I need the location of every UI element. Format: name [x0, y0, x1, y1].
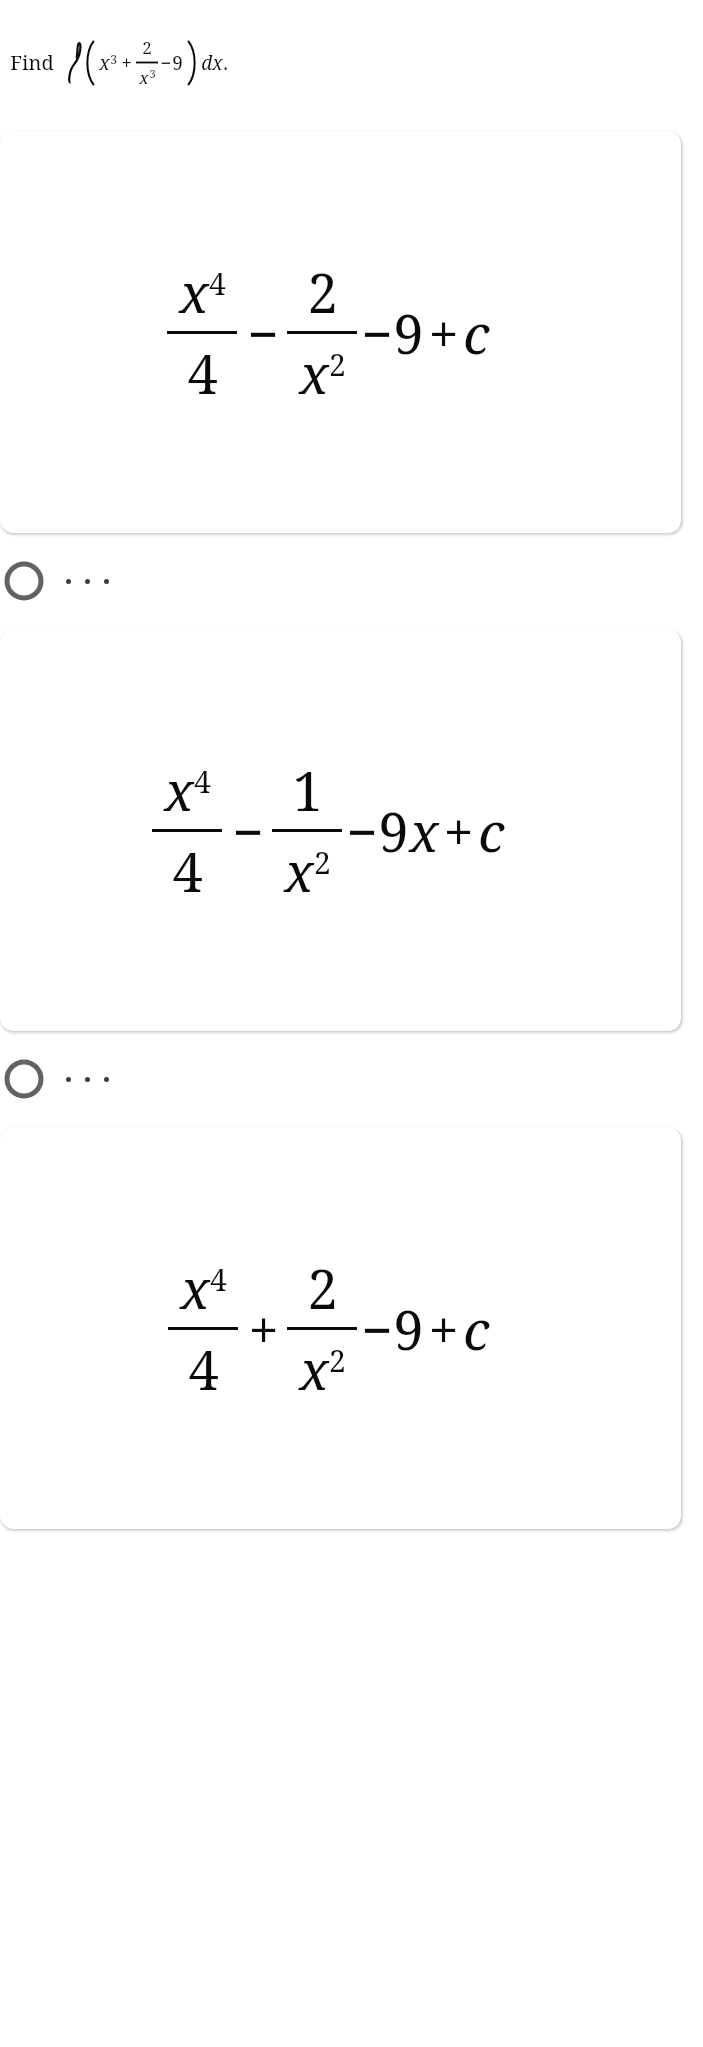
staticText: − [361, 1292, 393, 1366]
staticText: 3 [110, 51, 117, 67]
staticText: 4 [209, 263, 226, 304]
staticText: x [99, 50, 110, 76]
staticText: x [180, 1251, 210, 1325]
button[interactable]: x [0, 1127, 681, 1529]
staticText: x [179, 255, 209, 329]
staticText: + [121, 50, 132, 76]
staticText: x [139, 66, 149, 89]
staticText: 9 [393, 1292, 424, 1366]
staticText: dx [201, 50, 223, 76]
staticText: 3 [149, 66, 156, 81]
staticText: 4 [187, 336, 218, 410]
staticText: − [160, 50, 172, 76]
staticText: + [428, 1292, 459, 1366]
staticText: + [248, 1292, 279, 1366]
staticText: x [299, 1332, 329, 1406]
staticText: 1 [292, 753, 323, 827]
button[interactable]: x [0, 131, 681, 533]
staticText: − [232, 794, 264, 868]
staticText: 4 [188, 1332, 219, 1406]
staticText: + [428, 296, 459, 370]
staticText: + [443, 794, 474, 868]
staticText: 4 [194, 761, 211, 802]
staticText: 9 [378, 794, 409, 868]
staticText: x [299, 336, 329, 410]
staticText: c [463, 1292, 490, 1366]
button[interactable]: x [0, 629, 681, 1031]
staticText: 2 [142, 36, 152, 59]
staticText: x [409, 794, 439, 868]
staticText: 4 [210, 1259, 227, 1300]
staticText: x [164, 753, 194, 827]
staticText: 9 [393, 296, 424, 370]
staticText: 2 [307, 255, 338, 329]
button[interactable]: Select this answer [0, 1031, 703, 1127]
staticText: Find [10, 49, 54, 76]
staticText: 2 [329, 344, 346, 385]
staticText: 2 [307, 1251, 338, 1325]
staticText: . [223, 50, 228, 76]
staticText: − [361, 296, 393, 370]
staticText: 2 [329, 1340, 346, 1381]
staticText: 4 [172, 834, 203, 908]
staticText: c [478, 794, 505, 868]
staticText: c [463, 296, 490, 370]
button[interactable]: Select this answer [0, 533, 703, 629]
staticText: − [346, 794, 378, 868]
staticText: x [284, 834, 314, 908]
staticText: 9 [172, 50, 183, 76]
staticText: − [247, 296, 279, 370]
staticText: 2 [314, 842, 331, 883]
